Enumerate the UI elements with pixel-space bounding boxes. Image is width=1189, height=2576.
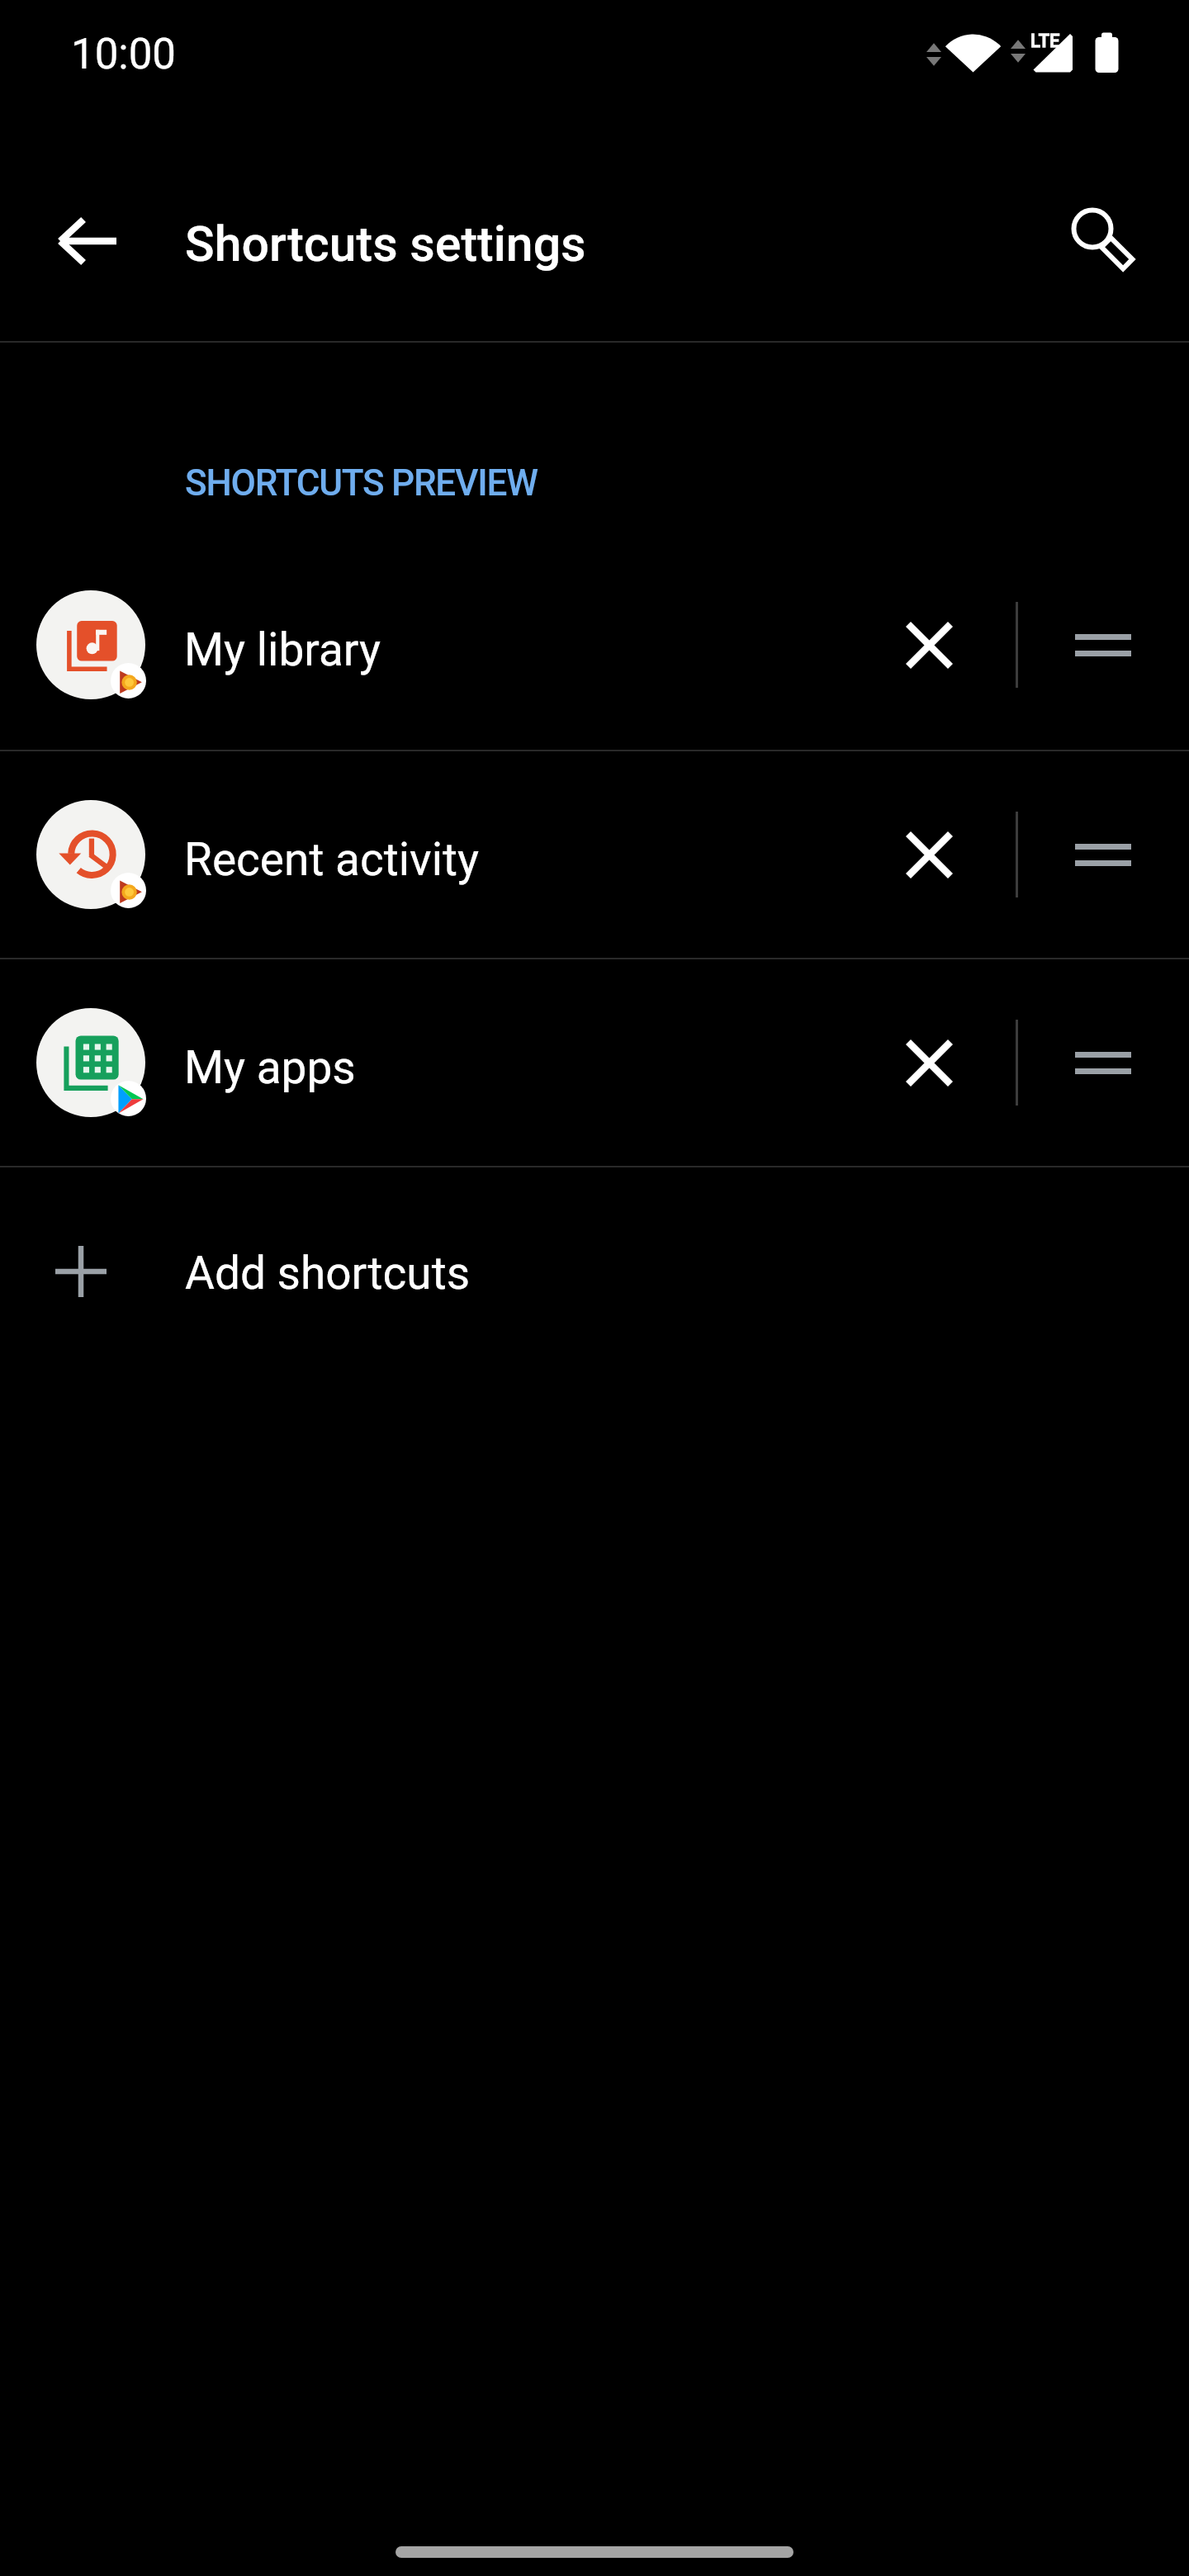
- button[interactable]: My library: [0, 542, 1189, 748]
- button[interactable]: Reorder: [1045, 1005, 1160, 1120]
- staticText: Shortcuts settings: [185, 215, 586, 273]
- staticText: Recent activity: [184, 833, 875, 887]
- button[interactable]: My apps: [0, 959, 1189, 1166]
- staticText: My library: [184, 623, 875, 677]
- button[interactable]: Back: [28, 182, 147, 301]
- staticText: 10:00: [71, 29, 177, 78]
- staticText: LTE: [1030, 30, 1060, 51]
- button[interactable]: Reorder: [1045, 797, 1160, 912]
- button[interactable]: Recent activity: [0, 751, 1189, 958]
- staticText: SHORTCUTS PREVIEW: [185, 462, 538, 504]
- button[interactable]: Search: [1049, 188, 1168, 307]
- button[interactable]: Add shortcuts: [0, 1167, 1189, 1376]
- button[interactable]: Reorder: [1045, 587, 1160, 703]
- staticText: Add shortcuts: [185, 1247, 471, 1300]
- button[interactable]: Remove: [875, 1005, 983, 1120]
- button[interactable]: Remove: [875, 587, 983, 703]
- button[interactable]: Remove: [875, 797, 983, 912]
- staticText: My apps: [184, 1041, 875, 1095]
